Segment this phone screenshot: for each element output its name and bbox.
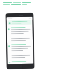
button[interactable] (8, 20, 32, 25)
button[interactable] (7, 60, 33, 64)
button[interactable] (7, 43, 33, 52)
button[interactable] (7, 36, 33, 42)
button[interactable] (3, 2, 61, 5)
button[interactable] (7, 53, 33, 59)
button[interactable] (7, 26, 33, 35)
button[interactable]: Home (5, 13, 35, 69)
